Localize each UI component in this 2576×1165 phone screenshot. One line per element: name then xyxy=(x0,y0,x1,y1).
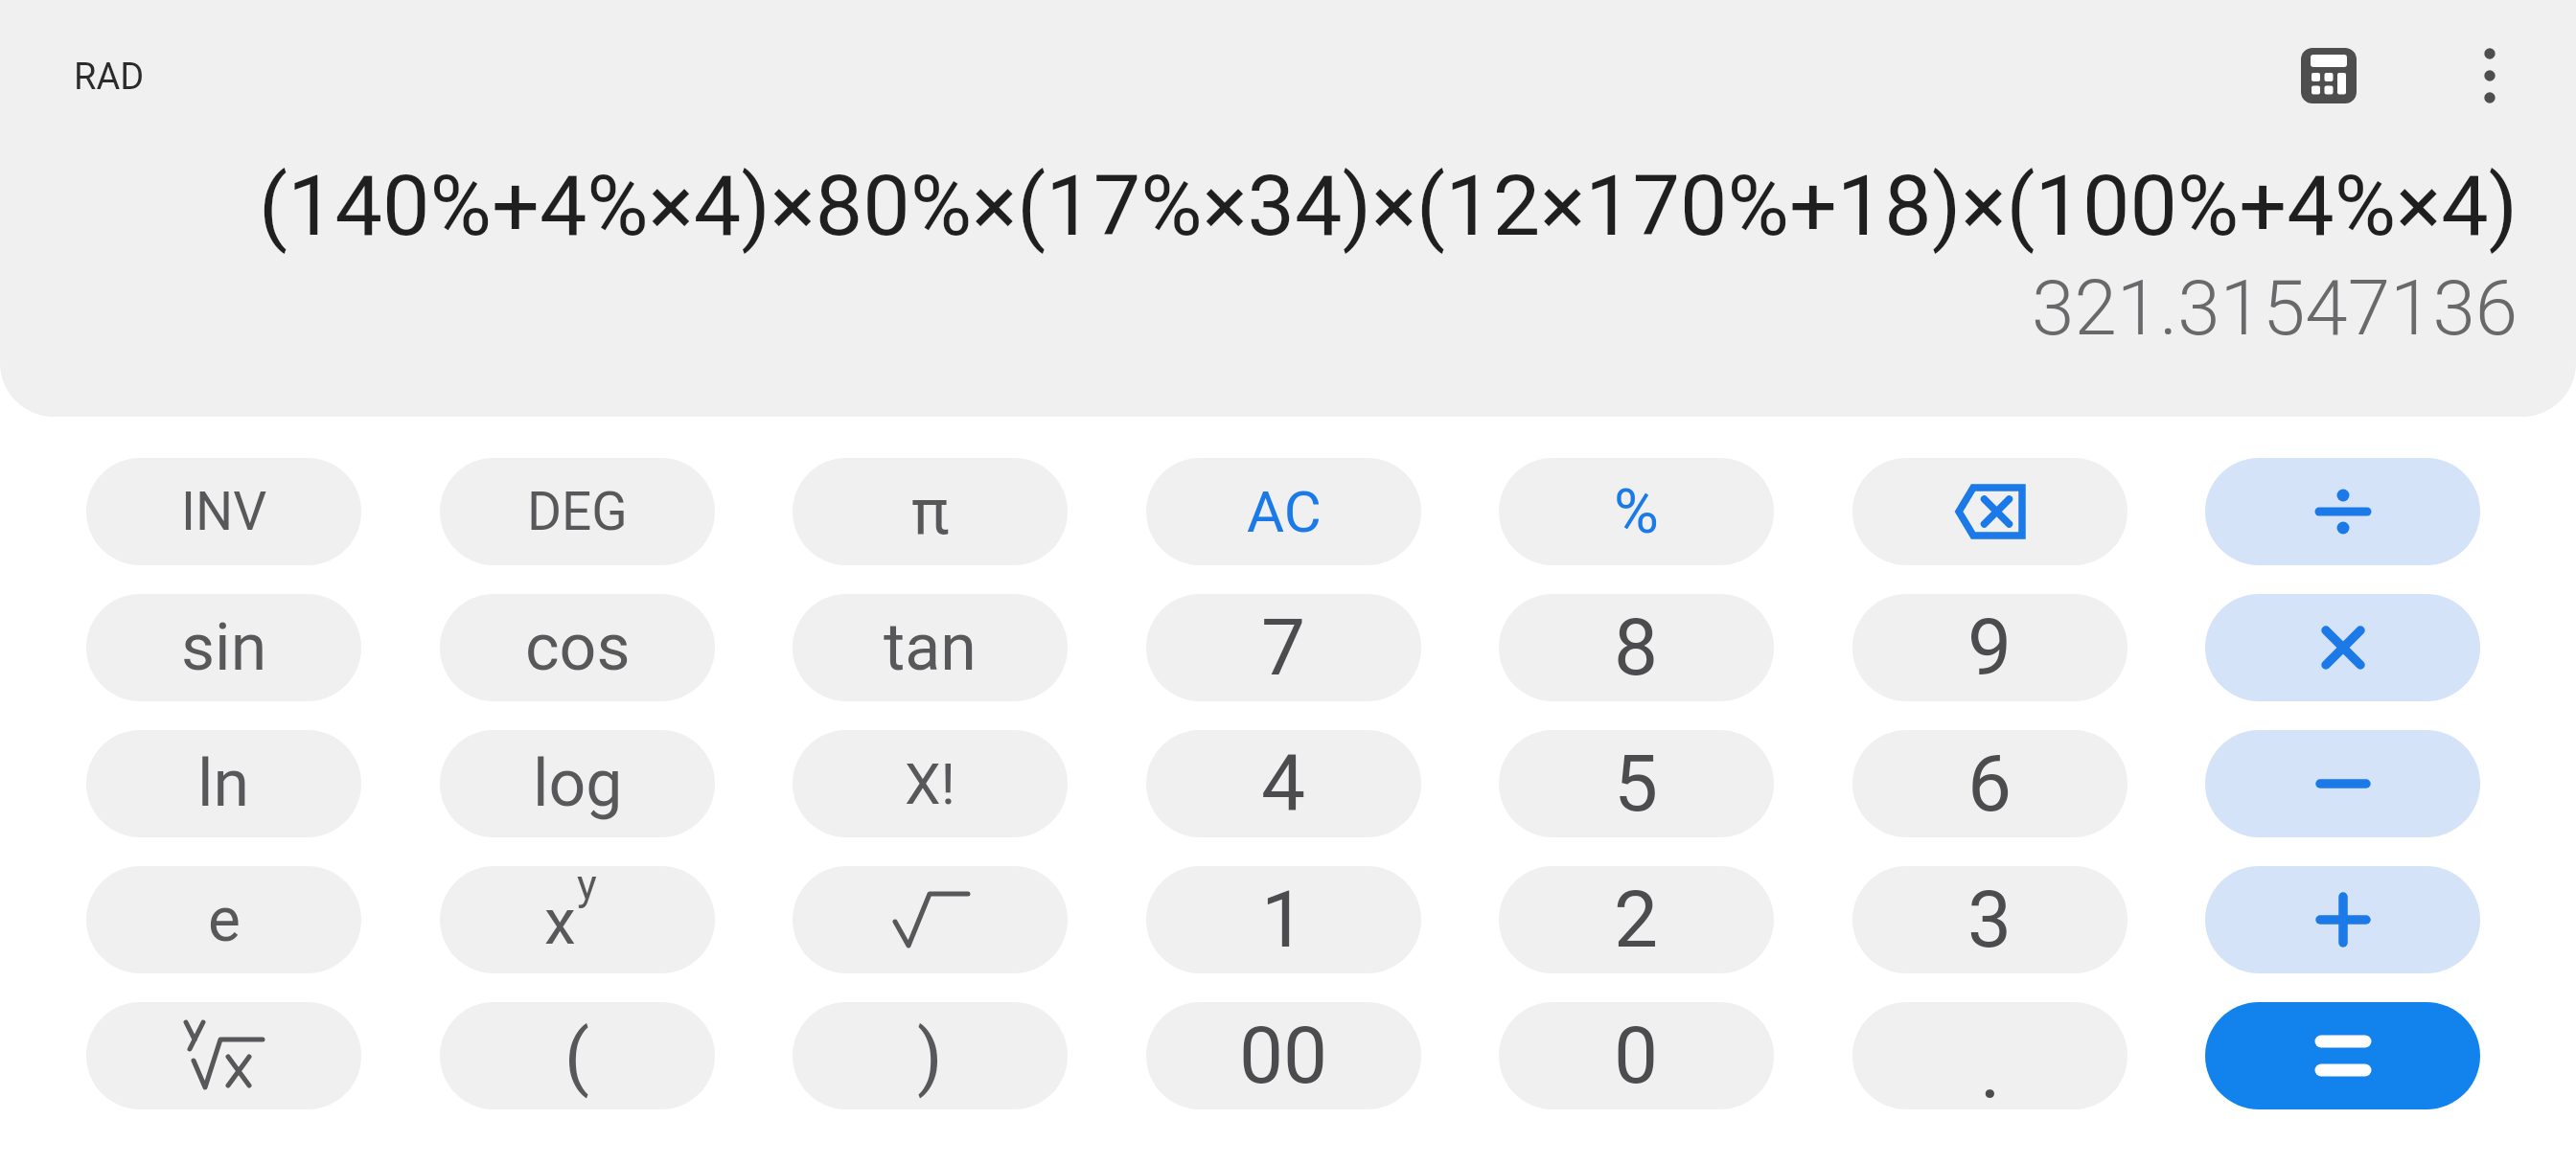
button[interactable]: . xyxy=(1852,1002,2127,1109)
staticText: 4 xyxy=(1261,738,1306,830)
button[interactable]: 6 xyxy=(1852,730,2127,837)
button[interactable]: ( xyxy=(440,1002,715,1109)
staticText: y xyxy=(577,866,597,910)
staticText: ) xyxy=(917,1014,943,1099)
button[interactable]: 0 xyxy=(1499,1002,1774,1109)
staticText: ( xyxy=(564,1014,590,1099)
staticText: 8 xyxy=(1614,602,1659,694)
staticText: 321.31547136 xyxy=(2032,263,2518,354)
button[interactable] xyxy=(1852,458,2127,565)
staticText: 2 xyxy=(1614,874,1659,966)
staticText: log xyxy=(533,745,623,822)
button[interactable]: 2 xyxy=(1499,866,1774,973)
staticText: AC xyxy=(1247,478,1322,545)
staticText: 5 xyxy=(1614,738,1659,830)
button[interactable] xyxy=(2205,458,2480,565)
button[interactable]: 9 xyxy=(1852,594,2127,701)
button[interactable]: sin xyxy=(86,594,361,701)
staticText: π xyxy=(911,475,950,549)
staticText: (140%+4%×4)×80%×(17%×34)×(12×170%+18)×(1… xyxy=(259,156,2518,255)
staticText: e xyxy=(208,884,241,956)
button[interactable] xyxy=(2205,730,2480,837)
button[interactable]: 1 xyxy=(1146,866,1421,973)
staticText: 9 xyxy=(1967,602,2012,694)
button[interactable]: 5 xyxy=(1499,730,1774,837)
button[interactable] xyxy=(86,1002,361,1109)
staticText: 0 xyxy=(1614,1010,1659,1102)
button[interactable]: 7 xyxy=(1146,594,1421,701)
staticText: ln xyxy=(197,745,250,822)
button[interactable]: e xyxy=(86,866,361,973)
button[interactable]: x xyxy=(440,866,715,973)
button[interactable]: % xyxy=(1499,458,1774,565)
staticText: 7 xyxy=(1261,602,1306,694)
staticText: 3 xyxy=(1967,874,2012,966)
button[interactable]: DEG xyxy=(440,458,715,565)
button[interactable] xyxy=(2461,40,2518,111)
button[interactable]: X! xyxy=(793,730,1068,837)
button[interactable]: 8 xyxy=(1499,594,1774,701)
staticText: 1 xyxy=(1261,874,1306,966)
button[interactable] xyxy=(2205,594,2480,701)
staticText: sin xyxy=(181,609,267,686)
button[interactable]: tan xyxy=(793,594,1068,701)
staticText: 6 xyxy=(1967,738,2012,830)
staticText: % xyxy=(1614,476,1659,548)
button[interactable]: ) xyxy=(793,1002,1068,1109)
button[interactable] xyxy=(793,866,1068,973)
button[interactable]: π xyxy=(793,458,1068,565)
button[interactable]: 4 xyxy=(1146,730,1421,837)
button[interactable]: 3 xyxy=(1852,866,2127,973)
button[interactable] xyxy=(2205,1002,2480,1109)
staticText: INV xyxy=(181,481,267,542)
staticText: DEG xyxy=(527,481,628,542)
button[interactable] xyxy=(2205,866,2480,973)
button[interactable]: 00 xyxy=(1146,1002,1421,1109)
staticText: 00 xyxy=(1239,1010,1328,1102)
staticText: x xyxy=(544,885,576,959)
staticText: tan xyxy=(884,609,977,686)
staticText: RAD xyxy=(74,56,145,99)
button[interactable]: cos xyxy=(440,594,715,701)
staticText: . xyxy=(1980,1025,2001,1109)
staticText: cos xyxy=(525,609,631,686)
staticText: X! xyxy=(905,750,956,817)
button[interactable] xyxy=(2293,40,2364,111)
button[interactable]: log xyxy=(440,730,715,837)
button[interactable]: ln xyxy=(86,730,361,837)
button[interactable]: AC xyxy=(1146,458,1421,565)
button[interactable]: INV xyxy=(86,458,361,565)
